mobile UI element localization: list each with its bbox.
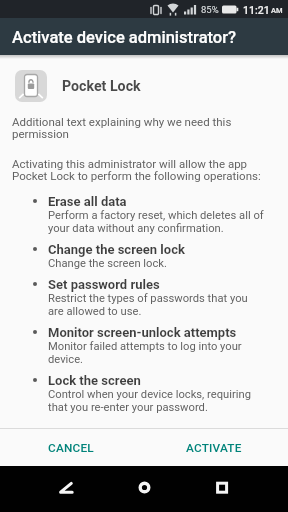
staticText: Set password rules bbox=[48, 277, 160, 292]
button[interactable]: ACTIVATE bbox=[170, 433, 258, 463]
button[interactable] bbox=[59, 482, 74, 494]
button[interactable] bbox=[138, 481, 151, 494]
staticText: Monitor screen-unlock attempts bbox=[48, 325, 237, 340]
staticText: ACTIVATE bbox=[186, 441, 242, 455]
staticText: Pocket Lock bbox=[62, 78, 141, 95]
staticText: CANCEL bbox=[48, 441, 94, 455]
staticText: Activate device administrator? bbox=[12, 28, 237, 47]
button[interactable]: CANCEL bbox=[32, 433, 110, 463]
staticText: AM bbox=[271, 6, 283, 15]
staticText: Additional text explaining why we need t… bbox=[12, 115, 232, 141]
staticText: 85% bbox=[201, 4, 219, 15]
staticText: Monitor failed attempts to log into your… bbox=[48, 340, 242, 366]
staticText: Control when your device locks, requirin… bbox=[48, 388, 251, 414]
staticText: Change the screen lock. bbox=[48, 257, 167, 270]
staticText: Activating this administrator will allow… bbox=[12, 157, 261, 183]
staticText: Change the screen lock bbox=[48, 242, 185, 257]
staticText: Erase all data bbox=[48, 194, 127, 209]
button[interactable] bbox=[216, 482, 228, 494]
staticText: Restrict the types of passwords that you… bbox=[48, 292, 248, 318]
staticText: Lock the screen bbox=[48, 373, 141, 388]
staticText: Perform a factory reset, which deletes a… bbox=[48, 209, 264, 235]
staticText: 11:21 bbox=[243, 4, 270, 16]
